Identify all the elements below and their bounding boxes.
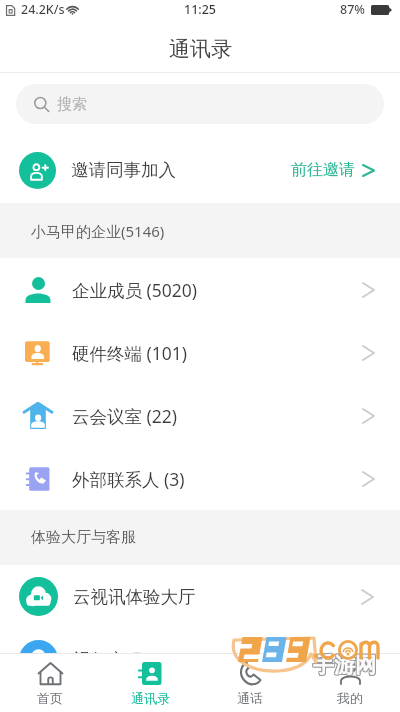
button[interactable]: 企业成员 (5020) <box>0 258 400 321</box>
staticText: 手游网 <box>313 653 376 679</box>
button[interactable]: 硬件终端 (101) <box>0 321 400 384</box>
button[interactable]: 通话 <box>200 654 300 712</box>
staticText: 24.2K/s <box>21 1 65 18</box>
staticText: 通讯录 <box>169 36 232 62</box>
button[interactable]: 云会议室 (22) <box>0 384 400 447</box>
staticText: 企业成员 (5020) <box>72 278 198 302</box>
staticText: 搜索 <box>57 95 87 114</box>
staticText: 云视讯体验大厅 <box>73 586 196 608</box>
staticText: 手游网 <box>314 652 377 678</box>
staticText: 体验大厅与客服 <box>31 528 136 547</box>
staticText: 11:25 <box>184 1 217 18</box>
staticText: 手游网 <box>313 651 376 677</box>
button[interactable]: 云视讯体验大厅 <box>0 565 400 628</box>
button[interactable]: 视频客服 <box>0 628 400 691</box>
staticText: 87% <box>340 1 365 18</box>
staticText: 云会议室 (22) <box>72 404 178 428</box>
button[interactable]: 外部联系人 (3) <box>0 447 400 510</box>
button[interactable]: 我的 <box>300 654 400 712</box>
staticText: 视频客服 <box>73 649 143 671</box>
button[interactable]: 搜索 <box>16 84 384 124</box>
staticText: 手游网 <box>314 651 377 677</box>
staticText: 外部联系人 (3) <box>72 467 185 491</box>
staticText: 手游网 <box>313 652 376 678</box>
staticText: 通话 <box>237 690 263 706</box>
staticText: 我的 <box>337 690 363 706</box>
staticText: 手游网 <box>314 653 377 679</box>
staticText: 首页 <box>37 690 63 706</box>
staticText: 手游网 <box>312 653 375 679</box>
staticText: 邀请同事加入 <box>71 159 176 181</box>
staticText: 手游网 <box>312 652 375 678</box>
button[interactable]: 通讯录 <box>100 654 200 712</box>
staticText: 硬件终端 (101) <box>72 341 188 365</box>
staticText: 前往邀请 <box>291 160 355 180</box>
staticText: 通讯录 <box>131 690 170 706</box>
staticText: 手游网 <box>312 651 375 677</box>
button[interactable]: 邀请同事加入 <box>0 137 400 203</box>
staticText: 小马甲的企业(5146) <box>31 221 165 241</box>
button[interactable]: 首页 <box>0 654 100 712</box>
